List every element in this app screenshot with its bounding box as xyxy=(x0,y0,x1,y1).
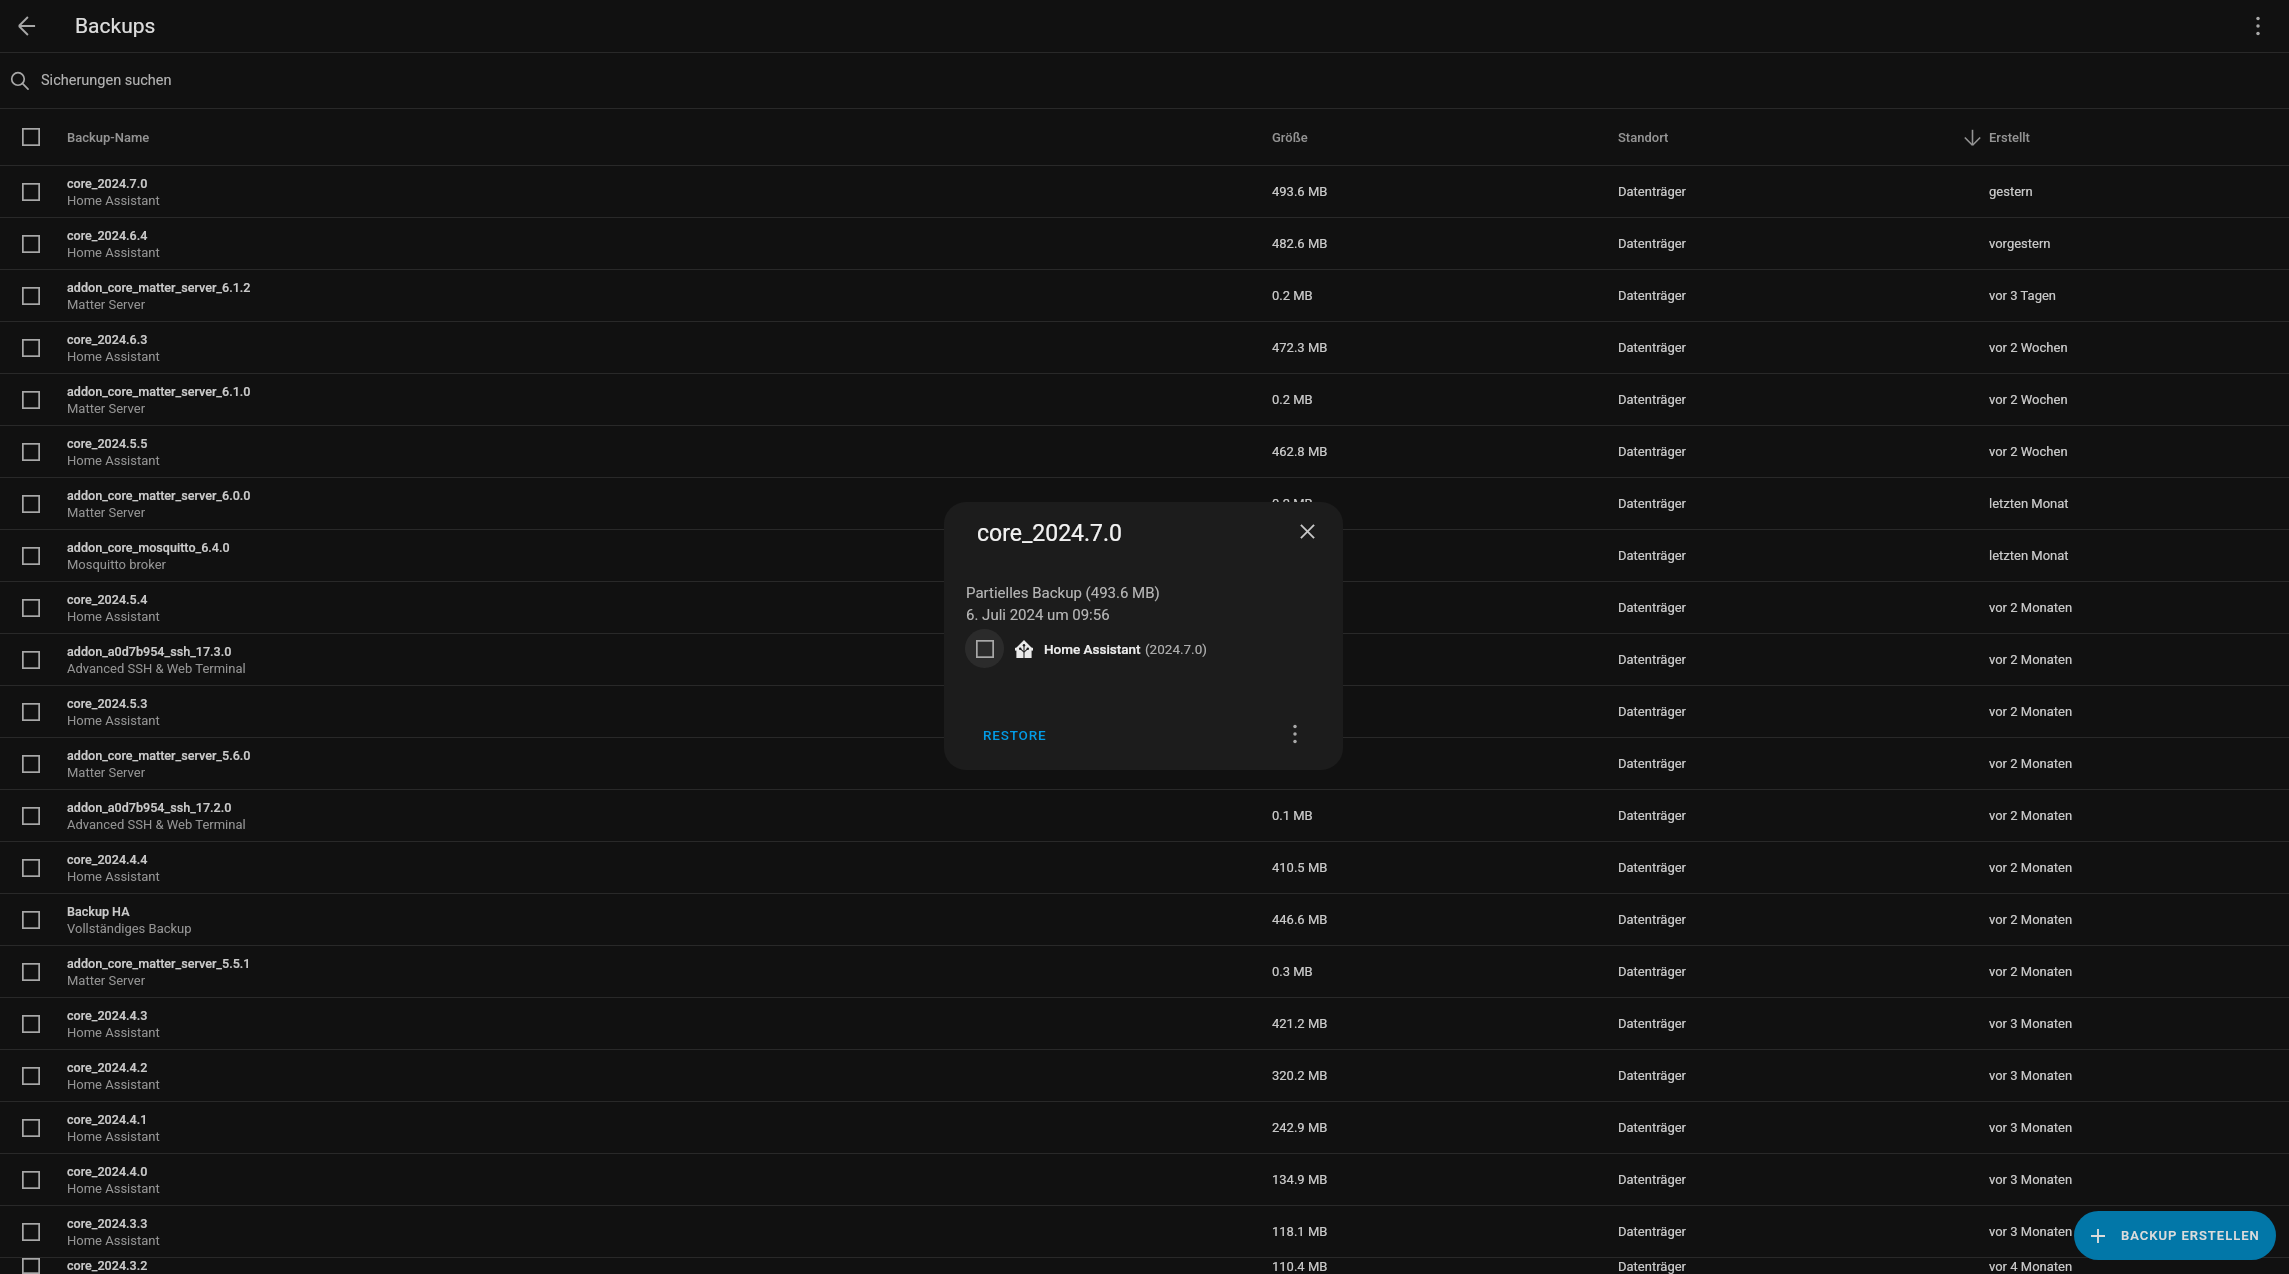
button[interactable]: Select addon_core_matter_server_6.1.0 xyxy=(13,382,49,418)
staticText: core_2024.4.0 xyxy=(67,1164,148,1179)
staticText: 493.6 MB xyxy=(1272,184,1328,199)
staticText: core_2024.3.3 xyxy=(67,1216,148,1231)
button[interactable]: Select core_2024.5.3 xyxy=(0,686,2289,737)
button[interactable]: Select addon_a0d7b954_ssh_17.2.0 xyxy=(0,790,2289,841)
button[interactable]: Select addon_core_matter_server_6.0.0 xyxy=(0,478,2289,529)
staticText: Home Assistant xyxy=(67,1233,160,1248)
button[interactable]: Größe xyxy=(1272,130,1308,145)
button[interactable]: Select core_2024.3.3 xyxy=(0,1206,2289,1257)
button[interactable]: Select core_2024.5.4 xyxy=(13,590,49,626)
staticText: Matter Server xyxy=(67,401,146,416)
button[interactable]: Erstellt xyxy=(1964,129,2030,146)
button[interactable]: Select Backup HA xyxy=(13,902,49,938)
button[interactable]: Back xyxy=(8,7,46,45)
button[interactable]: Select core_2024.4.1 xyxy=(0,1102,2289,1153)
button[interactable]: Select addon_core_mosquitto_6.4.0 xyxy=(13,538,49,574)
staticText: Datenträger xyxy=(1618,1224,1687,1239)
staticText: Datenträger xyxy=(1618,652,1687,667)
button[interactable]: Select core_2024.3.2 xyxy=(13,1258,49,1274)
staticText: addon_core_mosquitto_6.4.0 xyxy=(67,540,230,555)
button[interactable]: Select core_2024.6.4 xyxy=(0,218,2289,269)
staticText: 118.1 MB xyxy=(1272,1224,1328,1239)
staticText: Partielles Backup (493.6 MB) xyxy=(966,584,1160,602)
button[interactable]: Select core_2024.4.0 xyxy=(0,1154,2289,1205)
button[interactable]: Standort xyxy=(1618,130,1669,145)
staticText: addon_a0d7b954_ssh_17.3.0 xyxy=(67,644,232,659)
staticText: Backups xyxy=(75,14,156,39)
button[interactable]: RESTORE xyxy=(971,719,1059,751)
button[interactable]: Select core_2024.7.0 xyxy=(13,174,49,210)
staticText: vor 3 Monaten xyxy=(1989,1120,2073,1135)
staticText: Home Assistant xyxy=(67,609,160,624)
button[interactable]: Select core_2024.4.2 xyxy=(13,1058,49,1094)
button[interactable]: Select addon_core_matter_server_6.1.2 xyxy=(13,278,49,314)
button[interactable]: Select core_2024.6.4 xyxy=(13,226,49,262)
button[interactable]: Select core_2024.5.3 xyxy=(13,694,49,730)
button[interactable]: More options xyxy=(2239,7,2277,45)
staticText: Datenträger xyxy=(1618,392,1687,407)
button[interactable]: Sicherungen suchen xyxy=(0,53,2289,108)
staticText: vor 2 Monaten xyxy=(1989,912,2073,927)
staticText: Datenträger xyxy=(1618,704,1687,719)
button[interactable]: Select core_2024.7.0 xyxy=(0,166,2289,217)
button[interactable]: Select core_2024.4.1 xyxy=(13,1110,49,1146)
staticText: RESTORE xyxy=(983,727,1047,743)
button[interactable]: Select core_2024.3.2 xyxy=(0,1258,2289,1274)
staticText: Datenträger xyxy=(1618,288,1687,303)
staticText: 6. Juli 2024 um 09:56 xyxy=(966,606,1110,624)
button[interactable]: Select core_2024.3.3 xyxy=(13,1214,49,1250)
staticText: vor 3 Monaten xyxy=(1989,1172,2073,1187)
button[interactable]: Select core_2024.5.4 xyxy=(0,582,2289,633)
button[interactable]: Select addon_core_matter_server_6.0.0 xyxy=(13,486,49,522)
button[interactable]: Select core_2024.4.4 xyxy=(13,850,49,886)
button[interactable]: Select core_2024.4.4 xyxy=(0,842,2289,893)
staticText: core_2024.5.3 xyxy=(67,696,148,711)
button[interactable]: Select Backup HA xyxy=(0,894,2289,945)
button[interactable]: Select core_2024.4.0 xyxy=(13,1162,49,1198)
staticText: Datenträger xyxy=(1618,444,1687,459)
button[interactable]: Select core_2024.4.2 xyxy=(0,1050,2289,1101)
button[interactable]: Select addon_core_matter_server_5.6.0 xyxy=(0,738,2289,789)
staticText: vor 2 Monaten xyxy=(1989,652,2073,667)
button[interactable]: Select addon_core_matter_server_5.5.1 xyxy=(13,954,49,990)
staticText: addon_a0d7b954_ssh_17.2.0 xyxy=(67,800,232,815)
staticText: Home Assistant xyxy=(67,1025,160,1040)
button[interactable]: More actions xyxy=(1275,714,1315,754)
button[interactable]: Home Assistant xyxy=(965,629,1207,668)
staticText: Home Assistant xyxy=(67,869,160,884)
button[interactable]: Close xyxy=(1287,511,1327,551)
button[interactable]: Select core_2024.6.3 xyxy=(13,330,49,366)
button[interactable]: Select core_2024.6.3 xyxy=(0,322,2289,373)
button[interactable]: Select addon_core_matter_server_6.1.0 xyxy=(0,374,2289,425)
staticText: vor 3 Monaten xyxy=(1989,1068,2073,1083)
staticText: 0.2 MB xyxy=(1272,392,1313,407)
button[interactable]: Select addon_core_matter_server_5.6.0 xyxy=(13,746,49,782)
staticText: 0.2 MB xyxy=(1272,288,1313,303)
staticText: 0.2 MB xyxy=(1272,496,1313,511)
button[interactable]: BACKUP ERSTELLEN xyxy=(2074,1211,2276,1260)
button[interactable]: Select core_2024.5.5 xyxy=(0,426,2289,477)
button[interactable]: Select core_2024.5.5 xyxy=(13,434,49,470)
button[interactable]: Select all xyxy=(13,119,49,155)
staticText: letzten Monat xyxy=(1989,548,2069,563)
staticText: core_2024.7.0 xyxy=(977,520,1122,547)
staticText: vor 2 Monaten xyxy=(1989,756,2073,771)
staticText: Datenträger xyxy=(1618,1016,1687,1031)
staticText: Datenträger xyxy=(1618,600,1687,615)
staticText: Home Assistant xyxy=(67,245,160,260)
button[interactable]: Select addon_core_mosquitto_6.4.0 xyxy=(0,530,2289,581)
button[interactable]: Select addon_a0d7b954_ssh_17.2.0 xyxy=(13,798,49,834)
staticText: letzten Monat xyxy=(1989,496,2069,511)
button[interactable]: Select addon_a0d7b954_ssh_17.3.0 xyxy=(0,634,2289,685)
staticText: Datenträger xyxy=(1618,1172,1687,1187)
button[interactable]: Select addon_a0d7b954_ssh_17.3.0 xyxy=(13,642,49,678)
button[interactable]: Select addon_core_matter_server_6.1.2 xyxy=(0,270,2289,321)
button[interactable]: Select core_2024.4.3 xyxy=(13,1006,49,1042)
staticText: Vollständiges Backup xyxy=(67,921,192,936)
button[interactable]: Select core_2024.4.3 xyxy=(0,998,2289,1049)
button[interactable]: Select addon_core_matter_server_5.5.1 xyxy=(0,946,2289,997)
staticText: vor 2 Wochen xyxy=(1989,392,2068,407)
button[interactable]: Backup-Name xyxy=(67,130,150,145)
